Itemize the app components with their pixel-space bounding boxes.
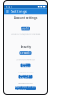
staticText: Protect your account	[18, 71, 33, 73]
staticText: Settings	[11, 9, 27, 14]
staticText: Last changed 3 months ago	[16, 59, 35, 61]
button[interactable]: Menu	[5, 8, 10, 14]
staticText: Account settings	[14, 16, 37, 20]
staticText: Edit profile	[21, 23, 30, 34]
staticText: Manage devices	[19, 73, 31, 80]
staticText: Signed in on 3 devices	[18, 83, 33, 84]
button[interactable]: Two-factor	[20, 64, 30, 67]
staticText: Security	[20, 45, 30, 49]
staticText: Update your name, photo and contact deta…	[11, 33, 40, 35]
staticText: Sign out of all sessions	[15, 85, 36, 92]
staticText: 9:41	[6, 5, 13, 8]
button[interactable]: Change password	[19, 51, 31, 55]
staticText: Two-factor	[21, 62, 29, 69]
button[interactable]: Sign out of all sessions	[15, 86, 36, 90]
button[interactable]: Edit profile	[21, 27, 30, 30]
button[interactable]: Manage devices	[18, 75, 32, 79]
staticText: Change password	[19, 48, 31, 58]
